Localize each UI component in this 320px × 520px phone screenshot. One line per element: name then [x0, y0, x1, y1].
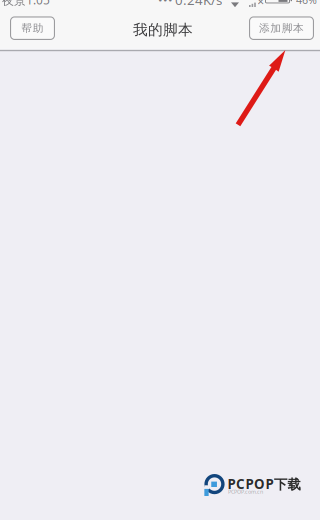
- staticText: 添加脚本: [259, 22, 304, 35]
- staticText: 46%: [296, 0, 317, 7]
- staticText: ✕: [257, 0, 265, 7]
- staticText: 0.24K/s: [175, 0, 222, 9]
- staticText: 夜景1.05: [2, 0, 50, 8]
- staticText: 帮助: [21, 22, 44, 35]
- staticText: PCPOP下载: [227, 475, 300, 493]
- staticText: PCPOP.com.cn: [228, 488, 263, 495]
- staticText: •••: [158, 0, 173, 8]
- button[interactable]: 添加脚本: [249, 16, 314, 40]
- button[interactable]: 帮助: [10, 16, 55, 40]
- staticText: 我的脚本: [133, 21, 193, 39]
